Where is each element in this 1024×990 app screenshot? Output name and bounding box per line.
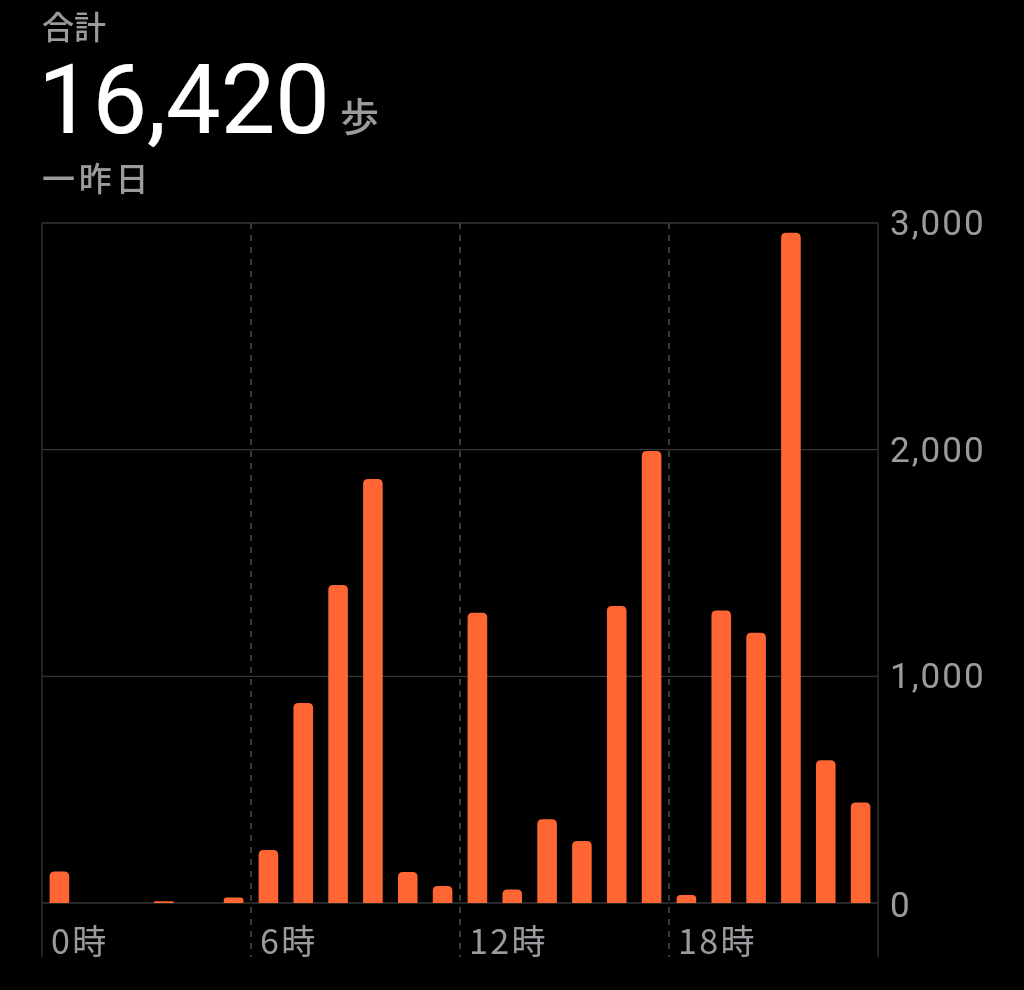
staticText: 一昨日 — [42, 153, 153, 201]
staticText: 6時 — [260, 915, 318, 964]
staticText: 3,000 — [890, 203, 986, 244]
staticText: 0時 — [51, 915, 109, 964]
staticText: 合計 — [42, 2, 107, 48]
staticText: 16,420 — [38, 43, 330, 157]
staticText: 18時 — [678, 915, 757, 964]
staticText: 1,000 — [890, 656, 986, 697]
staticText: 0 — [890, 885, 912, 926]
staticText: 12時 — [469, 915, 548, 964]
other: Hourly step count bar chart — [0, 0, 1024, 990]
button[interactable]: Total 16,420 steps, the day before yeste… — [30, 0, 420, 205]
staticText: 2,000 — [890, 430, 986, 471]
staticText: 歩 — [340, 86, 380, 142]
